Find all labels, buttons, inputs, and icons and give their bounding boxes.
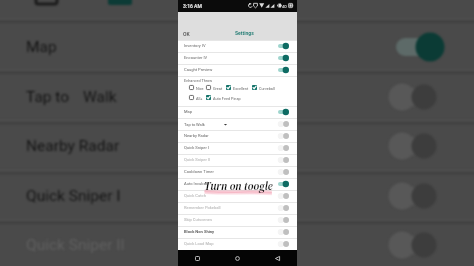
staticText: Block Non Shiny bbox=[184, 229, 215, 234]
staticText: Inventory IV bbox=[184, 43, 206, 48]
staticText: Quick Catch bbox=[184, 193, 206, 198]
other: Toggle bbox=[278, 132, 289, 140]
staticText: Quick Load Map bbox=[184, 241, 214, 246]
staticText: Quick Sniper I bbox=[26, 187, 121, 205]
button[interactable]: Map bbox=[178, 106, 297, 118]
staticText: Auto Incubate bbox=[184, 181, 210, 186]
other: Toggle bbox=[278, 120, 289, 128]
button[interactable]: All+ bbox=[189, 95, 203, 100]
staticText: Quick Sniper II bbox=[184, 157, 211, 162]
staticText: Skip Cutscenes bbox=[184, 217, 213, 222]
staticText: Settings bbox=[235, 30, 254, 36]
staticText: All+ bbox=[196, 96, 203, 100]
button[interactable]: Nice bbox=[189, 85, 204, 90]
staticText: Cooldown Timer bbox=[184, 169, 214, 174]
staticText: Enhanced Throw bbox=[184, 78, 213, 82]
button[interactable]: Home bbox=[217, 250, 257, 266]
other: Toggle bbox=[278, 144, 289, 152]
staticText: Walk bbox=[83, 88, 117, 106]
button[interactable]: OK bbox=[178, 29, 196, 40]
other: Toggle bbox=[278, 54, 289, 62]
staticText: Great bbox=[213, 86, 223, 90]
button[interactable]: Nearby Radar bbox=[178, 130, 297, 142]
other: Toggle bbox=[278, 216, 289, 224]
button[interactable]: Skip Cutscenes bbox=[178, 214, 297, 226]
staticText: Quick Sniper II bbox=[26, 236, 125, 254]
staticText: Walk bbox=[196, 122, 205, 127]
button[interactable]: Recent apps bbox=[178, 250, 217, 266]
other: Toggle bbox=[278, 240, 289, 248]
other: Expand bbox=[223, 122, 228, 127]
staticText: Turn on toogle bbox=[204, 179, 273, 194]
button[interactable]: Block Non Shiny bbox=[178, 226, 297, 238]
other: Toggle bbox=[278, 192, 289, 200]
button[interactable]: Caught Preview bbox=[178, 64, 297, 76]
button[interactable]: Auto Feed Pinap bbox=[206, 95, 241, 100]
staticText: Nice bbox=[196, 86, 204, 90]
staticText: Nearby Radar bbox=[26, 137, 120, 155]
staticText: OK bbox=[183, 31, 190, 37]
other: Toggle bbox=[278, 168, 289, 176]
button[interactable]: Quick Catch bbox=[178, 190, 297, 202]
button[interactable]: Excellent bbox=[226, 85, 249, 90]
staticText: Nearby Radar bbox=[184, 133, 209, 138]
other: Toggle bbox=[278, 228, 289, 236]
staticText: Curveball bbox=[259, 86, 275, 90]
button[interactable]: Auto Incubate bbox=[178, 178, 297, 190]
button[interactable]: Quick Sniper I bbox=[178, 142, 297, 154]
button[interactable]: Great bbox=[206, 85, 223, 90]
staticText: Tap to bbox=[26, 88, 70, 106]
button[interactable]: Curveball bbox=[252, 85, 275, 90]
staticText: Excellent bbox=[233, 86, 249, 90]
staticText: Encounter IV bbox=[184, 55, 208, 60]
button[interactable]: Encounter IV bbox=[178, 52, 297, 64]
button[interactable]: Inventory IV bbox=[178, 40, 297, 52]
staticText: Map bbox=[26, 38, 57, 56]
staticText: 40 bbox=[282, 4, 287, 9]
other: Toggle bbox=[278, 204, 289, 212]
other: Toggle bbox=[278, 180, 289, 188]
button[interactable]: Back bbox=[257, 250, 297, 266]
other: Toggle bbox=[278, 156, 289, 164]
button[interactable]: Tap to bbox=[178, 118, 297, 130]
button[interactable]: Cooldown Timer bbox=[178, 166, 297, 178]
staticText: Auto Feed Pinap bbox=[213, 96, 241, 100]
other: Toggle bbox=[278, 42, 289, 50]
staticText: Tap to bbox=[184, 122, 196, 127]
staticText: Caught Preview bbox=[184, 67, 213, 72]
other: Toggle bbox=[278, 66, 289, 74]
staticText: Map bbox=[184, 109, 193, 114]
staticText: Quick Sniper I bbox=[184, 145, 209, 150]
button[interactable]: Remember Pokeball bbox=[178, 202, 297, 214]
staticText: Remember Pokeball bbox=[184, 205, 221, 210]
button[interactable]: Quick Load Map bbox=[178, 238, 297, 250]
other: Toggle bbox=[278, 108, 289, 116]
button[interactable]: Quick Sniper II bbox=[178, 154, 297, 166]
staticText: 3:16 AM bbox=[183, 3, 202, 9]
